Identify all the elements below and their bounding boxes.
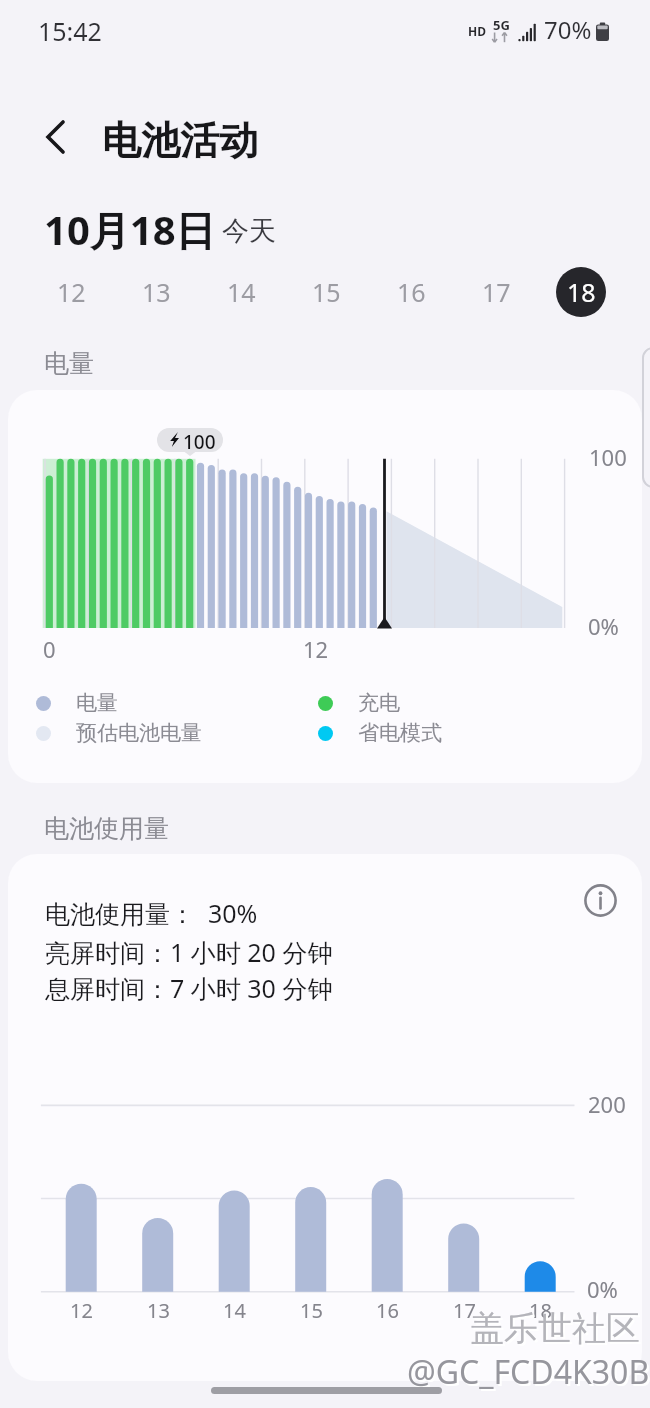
staticText: 0% (588, 611, 619, 641)
staticText: 16 (376, 1297, 399, 1321)
staticText: 盖乐世社区 (470, 1307, 640, 1350)
staticText: 18 (567, 275, 596, 309)
button[interactable]: Back (24, 105, 88, 169)
button[interactable]: 12 (39, 260, 103, 324)
staticText: 0 (43, 634, 56, 664)
button[interactable]: 13 (124, 260, 188, 324)
staticText: 息屏时间：7 小时 30 分钟 (45, 971, 333, 1005)
staticText: 盖乐世社区 (472, 1309, 642, 1352)
staticText: 13 (142, 275, 171, 309)
staticText: 16 (397, 275, 426, 309)
staticText: 12 (70, 1297, 93, 1321)
staticText: 12 (303, 634, 329, 664)
staticText: 15 (312, 275, 341, 309)
staticText: 亮屏时间：1 小时 20 分钟 (45, 935, 333, 969)
staticText: 省电模式 (358, 720, 442, 746)
staticText: 70% (544, 13, 592, 46)
staticText: 17 (453, 1297, 476, 1321)
staticText: 14 (223, 1297, 246, 1321)
staticText: 200 (588, 1089, 626, 1119)
staticText: @GC_FCD4K30B (407, 1350, 650, 1394)
staticText: 14 (227, 275, 256, 309)
staticText: 5G (493, 16, 510, 34)
staticText: 充电 (358, 690, 400, 716)
staticText: 电量 (76, 690, 118, 716)
staticText: 100 (183, 429, 216, 455)
staticText: 今天 (222, 214, 276, 248)
staticText: 12 (57, 275, 86, 309)
button[interactable]: 15 (294, 260, 358, 324)
staticText: 15:42 (38, 14, 102, 48)
button[interactable]: 17 (464, 260, 528, 324)
staticText: 10月18日 (44, 202, 216, 257)
staticText: HD (468, 23, 486, 39)
staticText: 电池使用量： 30% (45, 896, 258, 930)
staticText: 电量 (44, 348, 94, 379)
button[interactable]: 14 (209, 260, 273, 324)
button[interactable]: 16 (379, 260, 443, 324)
staticText: 15 (300, 1297, 323, 1321)
button[interactable]: 18 (549, 260, 613, 324)
staticText: 0% (587, 1274, 618, 1304)
staticText: 电池活动 (102, 116, 258, 165)
staticText: 电池使用量 (44, 813, 169, 844)
staticText: @GC_FCD4K30B (409, 1352, 650, 1396)
staticText: 17 (482, 275, 511, 309)
button[interactable]: Information (572, 872, 628, 928)
staticText: 预估电池电量 (76, 720, 202, 746)
staticText: 100 (589, 442, 627, 472)
staticText: 18 (529, 1297, 552, 1321)
staticText: 13 (147, 1297, 170, 1321)
